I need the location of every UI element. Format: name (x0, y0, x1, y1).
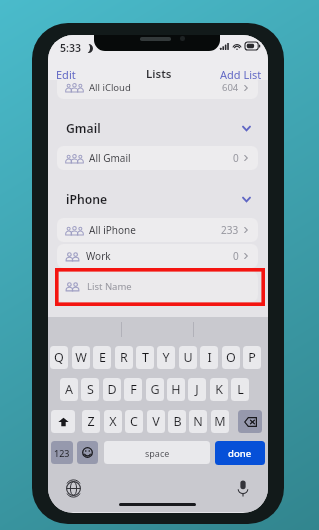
staticText: Work (86, 249, 111, 263)
button[interactable]: S (81, 378, 99, 401)
staticText: J (195, 381, 199, 398)
staticText: 233 (221, 223, 239, 237)
button[interactable]: H (167, 378, 185, 401)
staticText: Gmail (66, 120, 101, 137)
button[interactable]: Z (82, 410, 100, 433)
staticText: S (87, 381, 94, 398)
staticText: Add List (220, 67, 262, 81)
staticText: N (193, 413, 203, 430)
staticText: All iCloud (89, 81, 131, 94)
button[interactable]: R (115, 346, 133, 369)
button[interactable]: K (210, 378, 228, 401)
staticText: List Name (87, 280, 132, 293)
button[interactable]: iPhone (48, 188, 268, 210)
button[interactable]: All Gmail (57, 146, 258, 170)
staticText: O (226, 349, 236, 366)
staticText: Q (54, 349, 64, 366)
button[interactable]: Change keyboard (62, 477, 84, 499)
button[interactable]: J (188, 378, 206, 401)
button[interactable]: Work (57, 244, 258, 268)
staticText: Z (87, 413, 95, 430)
button[interactable]: Dictate (232, 477, 254, 499)
button[interactable]: Gmail (48, 117, 268, 139)
staticText: L (237, 381, 244, 398)
button[interactable]: N (189, 410, 207, 433)
button[interactable]: F (124, 378, 142, 401)
staticText: 123 (54, 447, 70, 459)
button[interactable]: Add List (216, 64, 266, 84)
staticText: M (214, 413, 226, 430)
button[interactable]: T (136, 346, 154, 369)
staticText: B (173, 413, 182, 430)
button[interactable]: Shift (51, 410, 75, 433)
staticText: I (207, 349, 212, 366)
button[interactable]: C (125, 410, 143, 433)
staticText: All Gmail (89, 151, 131, 165)
button[interactable]: O (222, 346, 240, 369)
button[interactable]: A (60, 378, 78, 401)
staticText: F (130, 381, 137, 398)
staticText: K (215, 381, 223, 398)
staticText: P (248, 349, 256, 366)
button[interactable]: E (93, 346, 111, 369)
button[interactable]: done (215, 441, 265, 465)
staticText: D (107, 381, 117, 398)
button[interactable]: Q (50, 346, 68, 369)
staticText: Y (162, 349, 170, 366)
button[interactable]: space (104, 441, 210, 464)
staticText: A (65, 381, 73, 398)
staticText: space (145, 447, 170, 459)
staticText: All iPhone (89, 223, 136, 237)
button[interactable]: All iPhone (57, 218, 258, 242)
button[interactable]: List Name (57, 271, 258, 302)
button[interactable]: U (179, 346, 197, 369)
button[interactable]: P (243, 346, 261, 369)
staticText: E (99, 349, 106, 366)
staticText: G (150, 381, 160, 398)
button[interactable]: V (147, 410, 165, 433)
button[interactable]: B (168, 410, 186, 433)
staticText: iPhone (66, 191, 108, 208)
staticText: V (152, 413, 160, 430)
staticText: 5:33 (60, 41, 81, 55)
button[interactable]: L (231, 378, 249, 401)
staticText: 0 (233, 151, 239, 165)
button[interactable]: W (72, 346, 90, 369)
button[interactable]: 123 (51, 441, 73, 464)
button[interactable]: G (146, 378, 164, 401)
staticText: T (142, 349, 149, 366)
button[interactable]: Edit (52, 64, 80, 84)
staticText: H (171, 381, 181, 398)
staticText: Edit (56, 67, 76, 81)
staticText: Lists (146, 66, 172, 82)
button[interactable]: Backspace (238, 410, 262, 433)
staticText: C (130, 413, 138, 430)
button[interactable]: Y (157, 346, 175, 369)
staticText: 604 (222, 81, 239, 94)
button[interactable]: M (211, 410, 229, 433)
staticText: done (228, 447, 252, 460)
staticText: X (109, 413, 117, 430)
staticText: W (75, 349, 87, 366)
staticText: 0 (233, 249, 239, 263)
button[interactable]: I (200, 346, 218, 369)
button[interactable]: D (103, 378, 121, 401)
button[interactable]: X (104, 410, 122, 433)
staticText: R (120, 349, 128, 366)
staticText: U (183, 349, 193, 366)
button[interactable]: All iCloud (57, 75, 258, 99)
button[interactable]: Emoji (77, 441, 98, 464)
